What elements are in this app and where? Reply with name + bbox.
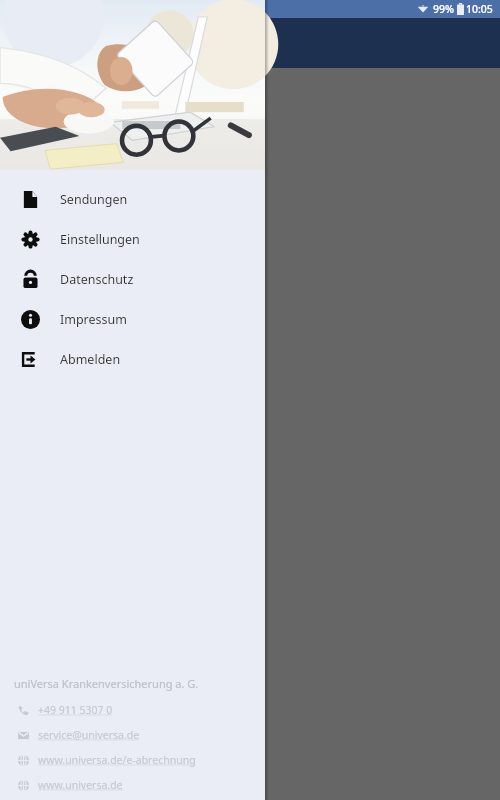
- staticText: Sendungen: [60, 191, 128, 208]
- staticText: 10:05: [466, 2, 493, 16]
- staticText: Tippen Sie auf das Plus-Symbol unten, um…: [24, 202, 437, 218]
- staticText: uniVersa Krankenversicherung a. G.: [14, 676, 199, 691]
- button[interactable]: Einstellungen: [0, 219, 265, 259]
- staticText: +49 911 5307 0: [38, 703, 113, 717]
- button[interactable]: Impressum: [0, 299, 265, 339]
- staticText: 99%: [433, 2, 454, 16]
- staticText: Impressum: [60, 311, 127, 328]
- staticText: www.universa.de/e-abrechnung: [38, 753, 196, 767]
- button[interactable]: Abmelden: [0, 339, 265, 379]
- button[interactable]: Sendungen: [0, 179, 265, 219]
- staticText: Einstellungen: [60, 231, 140, 248]
- button[interactable]: Website: [14, 753, 265, 767]
- button[interactable]: Call: [14, 703, 265, 717]
- button[interactable]: Website: [14, 778, 265, 792]
- button[interactable]: Datenschutz: [0, 259, 265, 299]
- staticText: service@universa.de: [38, 728, 140, 742]
- button[interactable]: Email: [14, 728, 265, 742]
- staticText: Datenschutz: [60, 271, 134, 288]
- staticText: Abmelden: [60, 351, 121, 368]
- staticText: www.universa.de: [38, 778, 123, 792]
